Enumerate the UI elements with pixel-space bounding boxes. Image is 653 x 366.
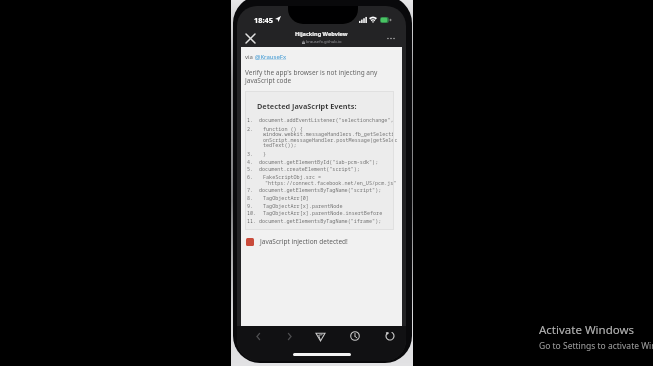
staticText: document.addEventListener("selectionchan… [259,117,394,124]
staticText: 9. [247,203,254,210]
staticText: TagObjectArr[0] [263,195,309,202]
staticText: FakeScriptObj.src = [263,174,322,181]
staticText: 11. [247,218,257,225]
button[interactable]: Close [242,30,259,47]
staticText: tedText()); [263,142,297,149]
button[interactable]: Share [312,328,328,344]
staticText: Detected JavaScript Events: [257,101,357,111]
staticText: JavaScript injection detected! [260,237,348,246]
staticText: 3. [247,151,254,158]
staticText: "https://connect.facebook.net/en_US/pcm.… [265,180,397,187]
staticText: 18:45 [254,15,273,25]
staticText: Hijacking Webview [295,30,348,38]
staticText: TagObjectArr[x].parentNode [263,203,343,210]
staticText: TagObjectArr[x].parentNode.insertBefore [263,210,383,217]
staticText: } [263,151,267,158]
staticText: 6. [247,174,254,181]
staticText: 8. [247,195,254,202]
staticText: 1. [247,117,254,124]
staticText: 5. [247,166,254,173]
button[interactable]: @KrauseFx [255,53,287,61]
staticText: 7. [247,187,254,194]
button[interactable]: History [347,328,363,344]
staticText: via [245,53,255,61]
staticText: function () { [263,126,303,133]
staticText: Activate Windows [539,322,635,338]
staticText: window.webkit.messageHandlers.fb_getSele… [263,131,395,138]
staticText: document.getElementById("iab-pcm-sdk"); [259,159,379,166]
staticText: onScript.messageHandler.postMessage(getS… [263,137,398,144]
button[interactable]: Back [250,328,266,344]
staticText: document.getElementsByTagName("iframe"); [259,218,382,225]
staticText: document.createElement("script"); [259,166,360,173]
staticText: Go to Settings to activate Windows [539,340,653,352]
staticText: Verify the app's browser is not injectin… [245,68,378,85]
button[interactable]: Forward [281,328,297,344]
staticText: 2. [247,126,254,133]
button[interactable]: More options [383,30,399,46]
staticText: krausefx.github.io [306,39,342,45]
staticText: 10. [247,210,257,217]
staticText: document.getElementsByTagName("script"); [259,187,382,194]
staticText: 4. [247,159,254,166]
button[interactable]: Reload [382,328,398,344]
